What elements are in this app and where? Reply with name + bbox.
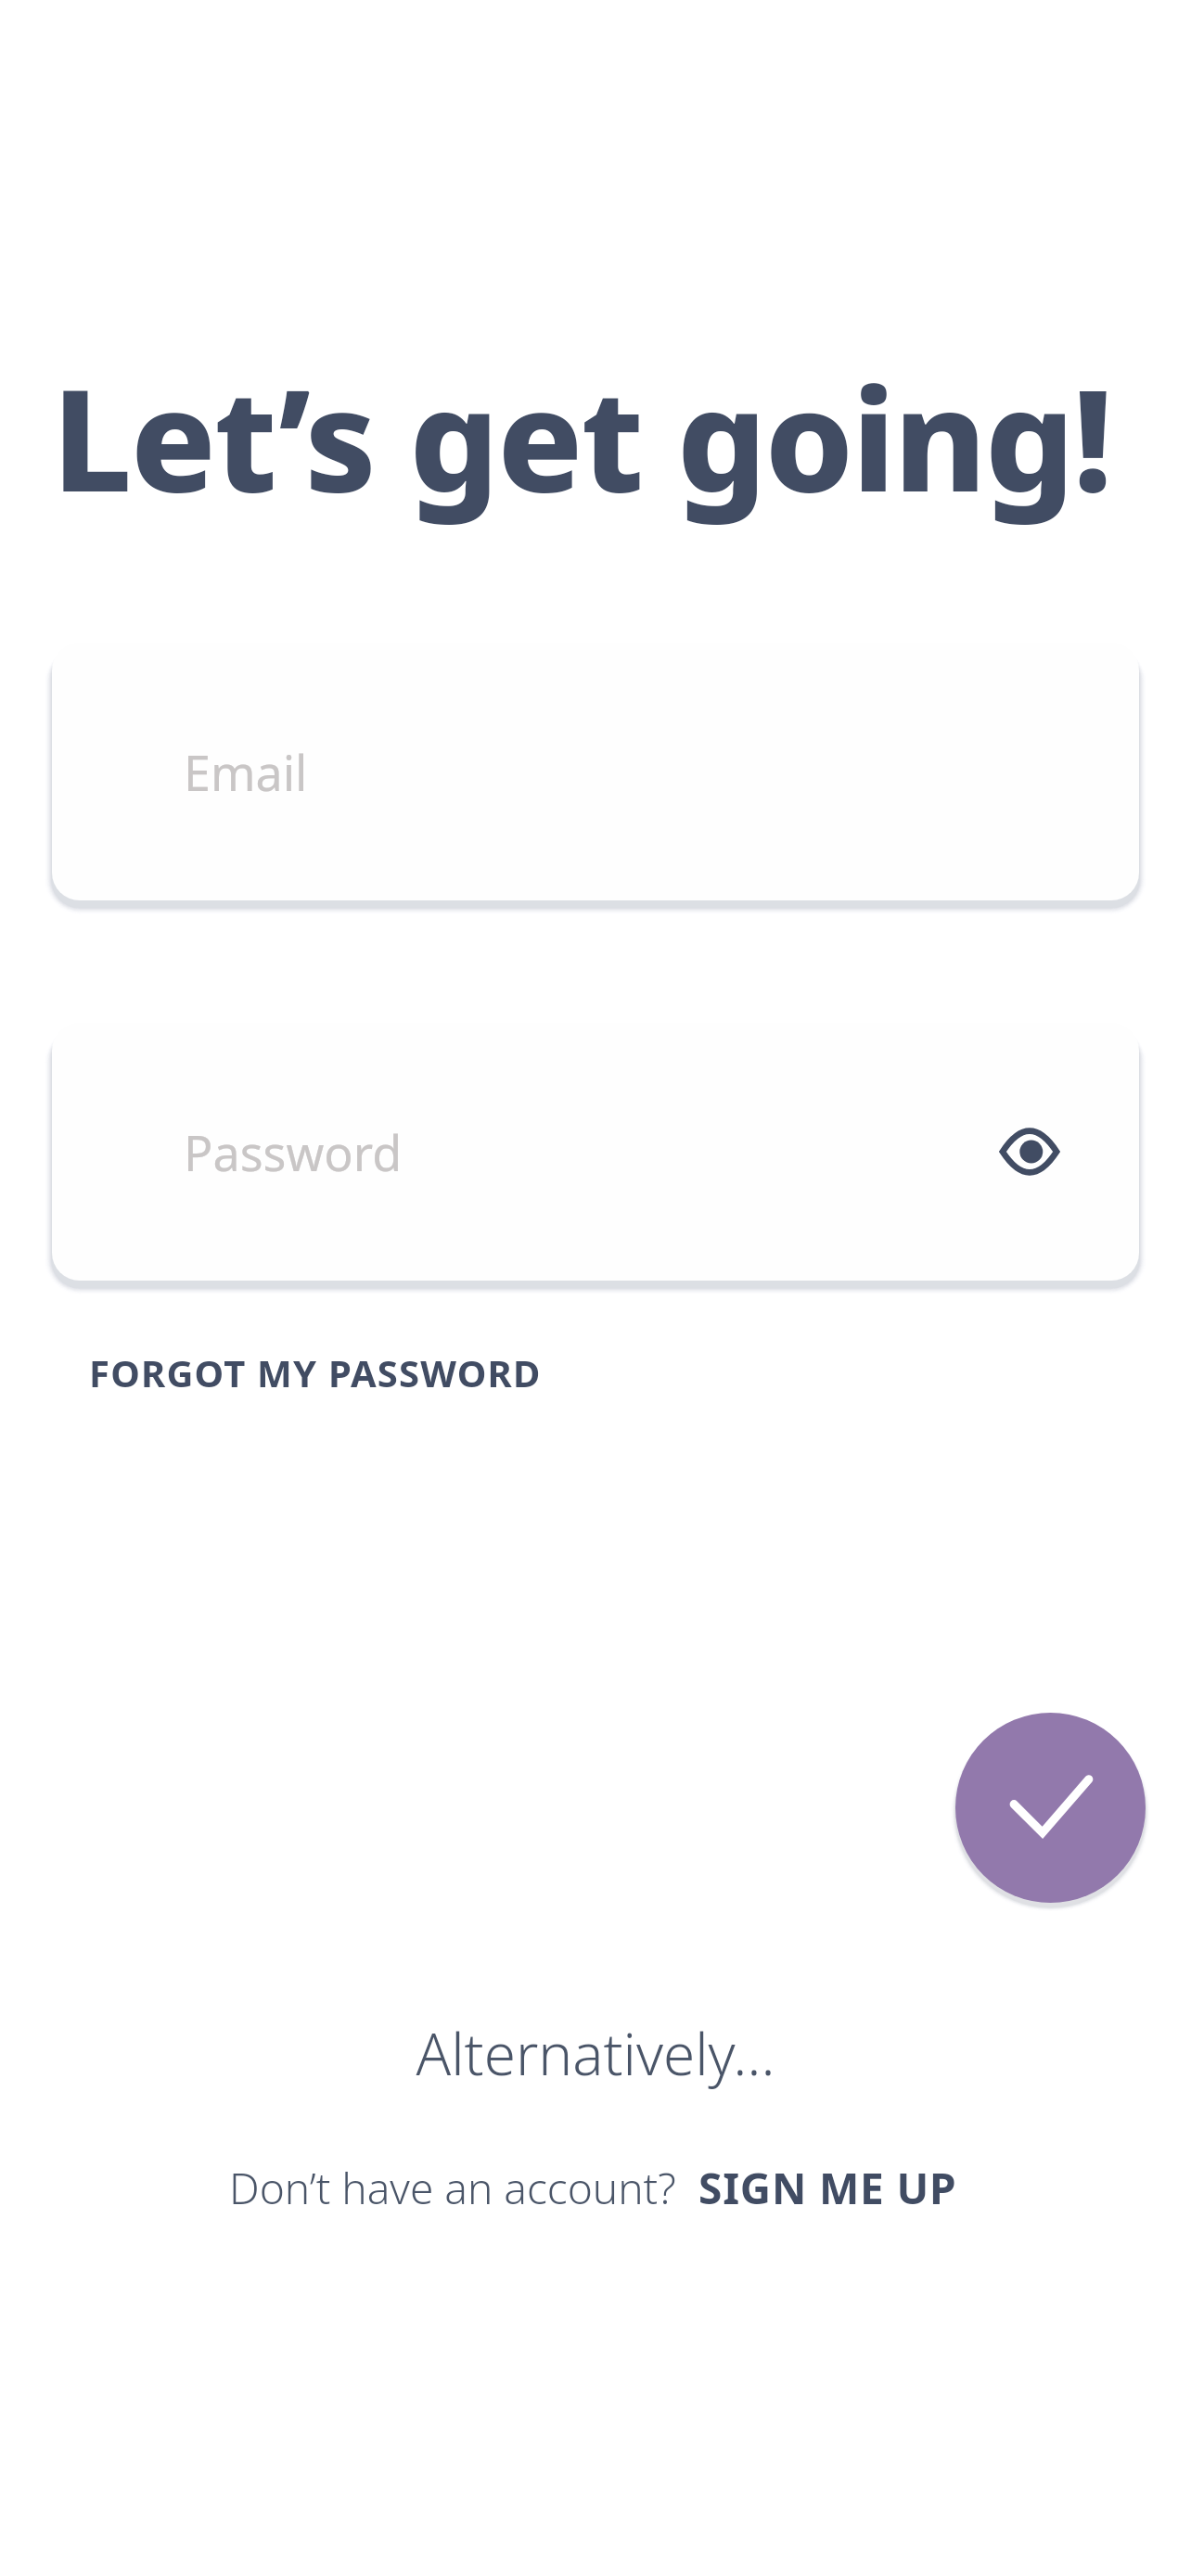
staticText: Don’t have an account? — [229, 2159, 676, 2217]
staticText: Email — [184, 739, 308, 805]
button[interactable]: Confirm — [955, 1713, 1146, 1903]
staticText: Let’s get going! — [52, 341, 1112, 533]
staticText: SIGN ME UP — [698, 2159, 957, 2217]
staticText: FORGOT MY PASSWORD — [89, 1347, 542, 1397]
button[interactable]: Show password — [991, 1113, 1069, 1191]
staticText: Alternatively… — [0, 2014, 1191, 2092]
button[interactable]: Email — [52, 643, 1139, 900]
button[interactable]: FORGOT MY PASSWORD — [78, 1338, 553, 1407]
button[interactable]: Password — [52, 1023, 1139, 1281]
staticText: Password — [184, 1119, 403, 1185]
button[interactable]: SIGN ME UP — [693, 2153, 963, 2223]
